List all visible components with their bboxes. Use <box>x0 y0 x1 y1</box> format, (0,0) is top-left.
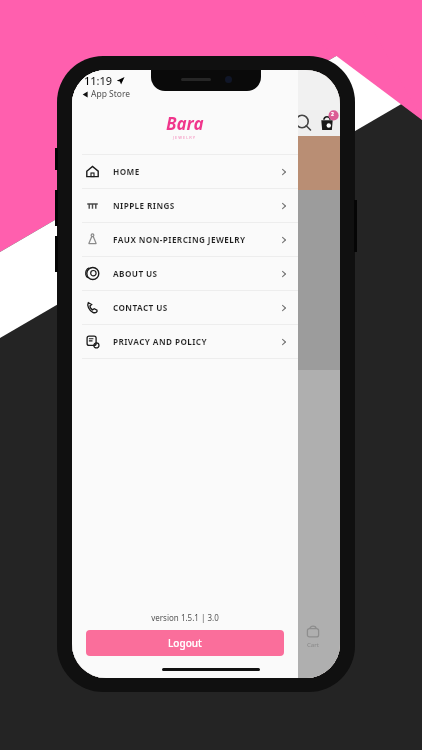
staticText: JEWELRY <box>173 135 197 140</box>
button[interactable]: Search <box>293 113 313 133</box>
staticText: Cart <box>307 641 319 649</box>
button[interactable]: NIPPLE RINGS <box>72 189 298 222</box>
staticText: 11:19 <box>84 73 113 88</box>
button[interactable]: ABOUT US <box>72 257 298 290</box>
staticText: FAUX NON-PIERCING JEWELRY <box>113 234 280 245</box>
staticText: version 1.5.1 | 3.0 <box>72 612 298 623</box>
staticText: Bara <box>166 112 204 135</box>
button[interactable]: FAUX NON-PIERCING JEWELRY <box>72 223 298 256</box>
button[interactable]: Cart <box>316 111 338 133</box>
staticText: CONTACT US <box>113 302 280 313</box>
button[interactable]: PRIVACY AND POLICY <box>72 325 298 358</box>
staticText: ABOUT US <box>113 268 280 279</box>
staticText: 2 <box>331 111 334 118</box>
button[interactable]: Cart <box>305 623 321 639</box>
button[interactable]: CONTACT US <box>72 291 298 324</box>
button[interactable]: HOME <box>72 155 298 188</box>
staticText: PRIVACY AND POLICY <box>113 336 280 347</box>
button[interactable]: Logout <box>86 630 284 656</box>
staticText: HOME <box>113 166 280 177</box>
staticText: Logout <box>168 636 202 650</box>
staticText: App Store <box>91 88 131 100</box>
staticText: NIPPLE RINGS <box>113 200 280 211</box>
